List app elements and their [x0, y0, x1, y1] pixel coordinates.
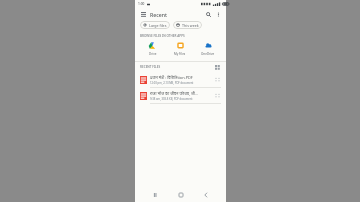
staticText: राजा भोज का जीवन परिचय, जी... [150, 91, 198, 96]
staticText: BROWSE FILES IN OTHER APPS [140, 34, 185, 38]
button[interactable]: OneDrive [194, 40, 222, 57]
staticText: This week [182, 23, 199, 28]
button[interactable]: Switch view [214, 64, 221, 71]
button[interactable]: Search [204, 10, 212, 18]
button[interactable]: Home [176, 190, 186, 200]
staticText: Large files [149, 23, 167, 28]
staticText: 12:03 pm, 2.13 MB, PDF document [150, 81, 194, 85]
button[interactable]: Back [201, 190, 211, 200]
staticText: Drive [149, 52, 157, 56]
staticText: 9:38 am, 303.8 KB, PDF document [150, 97, 193, 101]
button[interactable]: Menu [139, 10, 147, 18]
button[interactable]: More options [214, 10, 222, 18]
staticText: OneDrive [201, 52, 215, 56]
button[interactable]: File options [214, 76, 221, 83]
staticText: My Files [174, 52, 186, 56]
button[interactable]: राजा भोज का जीवन परिचय, जी... [135, 88, 226, 103]
button[interactable]: File options [214, 92, 221, 99]
staticText: 1:00 [138, 2, 145, 6]
button[interactable]: Large files [140, 21, 170, 29]
button[interactable]: Drive [139, 40, 166, 57]
staticText: Recent [150, 11, 168, 18]
button[interactable]: Recents [150, 190, 160, 200]
staticText: RECENT FILES [140, 65, 161, 69]
button[interactable]: My Files [166, 40, 194, 57]
button[interactable]: प्रधान मंत्री : विशिष्टिtion.PDF [135, 72, 226, 87]
staticText: प्रधान मंत्री : विशिष्टिtion.PDF [150, 75, 193, 80]
button[interactable]: This week [173, 21, 202, 29]
